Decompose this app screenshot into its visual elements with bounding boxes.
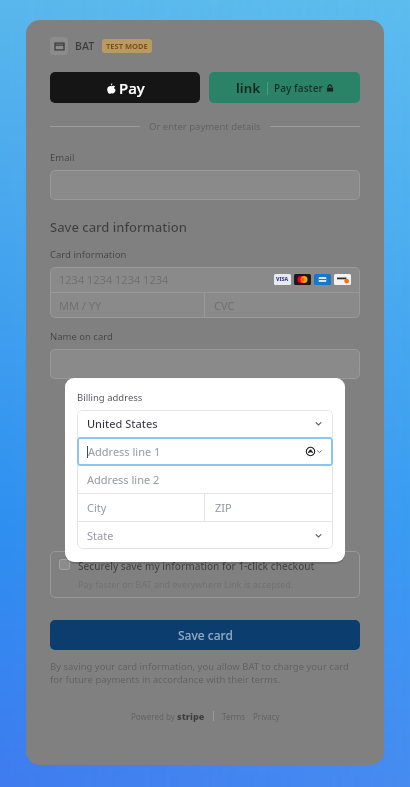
button[interactable]: Privacy [253, 711, 280, 722]
button[interactable]: City [77, 494, 204, 521]
button[interactable]: CVC [205, 293, 360, 318]
button[interactable]: Save card [50, 620, 360, 650]
staticText: Address line 2 [87, 472, 160, 487]
button[interactable]: Apple Pay [50, 72, 200, 103]
button[interactable]: State [77, 522, 333, 549]
staticText: Save card [178, 627, 233, 643]
staticText: Powered by [131, 711, 177, 722]
staticText: stripe [177, 710, 205, 722]
staticText: Email [50, 151, 75, 164]
staticText: Pay [119, 78, 145, 98]
button[interactable] [50, 349, 360, 379]
button[interactable]: Address line 1 [77, 437, 333, 466]
staticText: Name on card [50, 330, 113, 343]
staticText: Pay faster [274, 81, 323, 95]
staticText: United States [87, 416, 158, 431]
staticText: 1234 1234 1234 1234 [59, 272, 169, 287]
staticText: link [236, 79, 261, 97]
staticText: CVC [214, 298, 235, 313]
staticText: TEST MODE [106, 41, 148, 51]
staticText: Address line 1 [88, 444, 161, 459]
staticText: State [87, 528, 114, 543]
staticText: City [87, 500, 107, 515]
staticText: Or enter payment details [149, 120, 261, 133]
button[interactable]: United States [77, 410, 333, 437]
staticText: By saving your card information, you all… [50, 660, 360, 686]
staticText: Securely save my information for 1-click… [78, 559, 315, 573]
staticText: Pay faster on BAT and everywhere Link is… [78, 578, 294, 590]
button[interactable]: Pay faster with Link [209, 72, 360, 103]
button[interactable]: 1234 1234 1234 1234 [50, 267, 360, 292]
staticText: Billing address [77, 391, 143, 404]
button[interactable]: MM / YY [50, 293, 204, 318]
button[interactable] [50, 170, 360, 200]
button[interactable]: Securely save my information for 1-click… [50, 551, 360, 598]
staticText: ZIP [215, 500, 232, 515]
staticText: VISA [276, 276, 289, 283]
staticText: MM / YY [59, 298, 102, 313]
button[interactable]: ZIP [205, 494, 333, 521]
button[interactable]: Address line 2 [77, 466, 333, 493]
button[interactable]: Terms [222, 711, 246, 722]
staticText: Card information [50, 248, 127, 261]
button[interactable]: Autofill address [306, 447, 323, 456]
staticText: Save card information [50, 218, 187, 236]
staticText: BAT [75, 39, 95, 53]
